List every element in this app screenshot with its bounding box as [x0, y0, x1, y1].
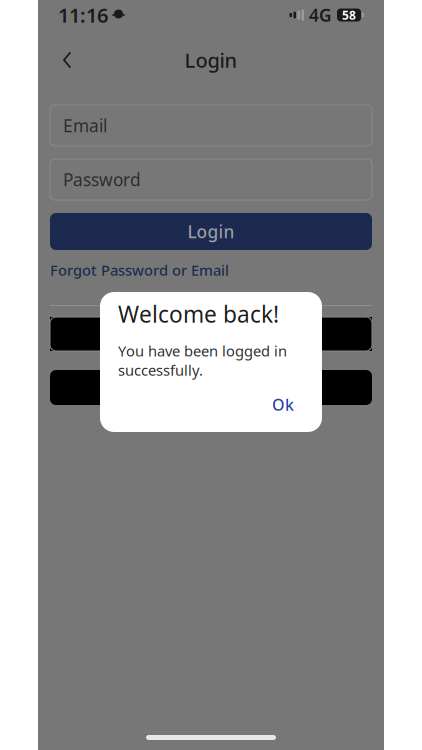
button[interactable]: Back [50, 43, 84, 77]
staticText: Email [63, 114, 107, 137]
staticText: Welcome back! [118, 299, 279, 329]
staticText: 11:16 [58, 2, 108, 28]
staticText: Ok [272, 394, 294, 415]
staticText: 58 [342, 7, 356, 23]
button[interactable]: Login [50, 213, 372, 250]
staticText: Forgot Password or Email [50, 260, 229, 280]
staticText: 4G [309, 3, 332, 26]
staticText: Password [63, 168, 141, 191]
staticText: Login [184, 47, 237, 73]
button[interactable]: Sign in with Apple [50, 370, 372, 405]
button[interactable]: Ok [262, 388, 304, 421]
button[interactable]: Forgot Password or Email [50, 259, 372, 281]
staticText: Login [187, 220, 234, 243]
staticText: You have been logged in successfully. [118, 341, 287, 380]
